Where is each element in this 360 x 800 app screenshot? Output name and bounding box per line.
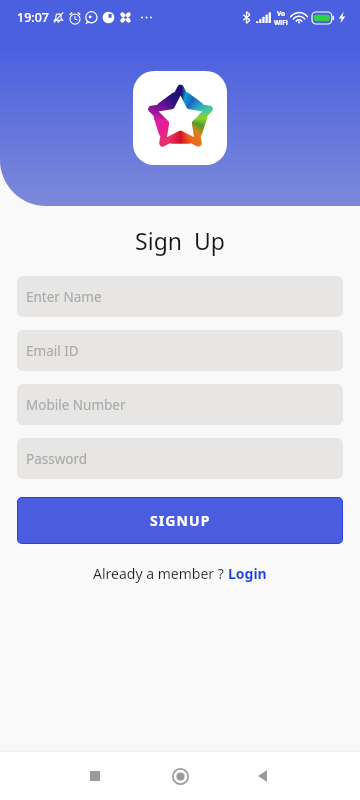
button[interactable]: Password <box>17 438 343 479</box>
button[interactable]: Email ID <box>17 330 343 371</box>
staticText: 19:07 <box>17 9 50 26</box>
staticText: Enter Name <box>26 288 102 306</box>
staticText: Mobile Number <box>26 396 126 414</box>
staticText: Login <box>228 564 267 583</box>
staticText: WiFi <box>274 18 288 27</box>
staticText: Sign Up <box>0 225 360 256</box>
button[interactable]: Enter Name <box>17 276 343 317</box>
staticText: SIGNUP <box>150 511 211 530</box>
button[interactable]: Login <box>228 564 267 583</box>
staticText: Password <box>26 450 88 468</box>
button[interactable]: Home <box>152 752 208 800</box>
staticText: Vo <box>277 9 286 18</box>
button[interactable]: SIGNUP <box>17 497 343 544</box>
button[interactable]: Mobile Number <box>17 384 343 425</box>
button[interactable]: Recent apps <box>67 752 123 800</box>
staticText: Already a member ? <box>93 564 228 583</box>
staticText: Email ID <box>26 342 79 360</box>
button[interactable]: Back <box>234 752 290 800</box>
